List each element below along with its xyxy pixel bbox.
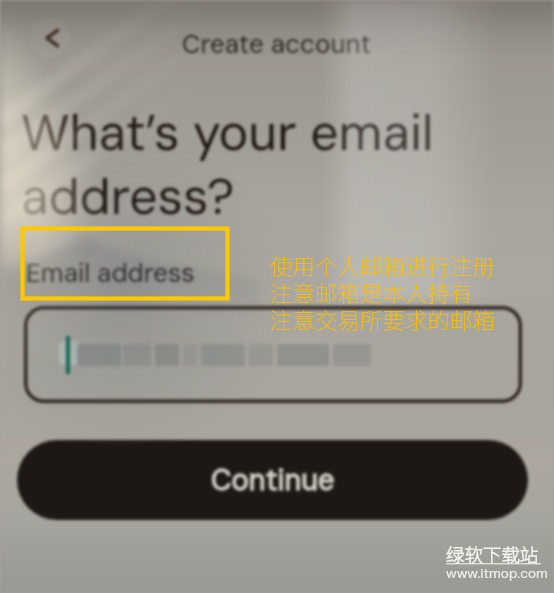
button[interactable]: Back [29, 18, 69, 58]
staticText: Create account [182, 27, 372, 61]
staticText: Continue [211, 461, 335, 499]
staticText: What’s your email [21, 100, 434, 165]
staticText: address? [21, 164, 235, 229]
staticText: 使用个人邮箱进行注册 注意邮箱是本人持有 注意交易所要求的邮箱 [270, 249, 496, 335]
button[interactable] [24, 306, 522, 403]
staticText: Email address [26, 256, 195, 290]
staticText: 绿软下载站 [446, 541, 539, 568]
staticText: www.itmop.com [446, 565, 548, 583]
button[interactable]: Continue [17, 440, 528, 520]
